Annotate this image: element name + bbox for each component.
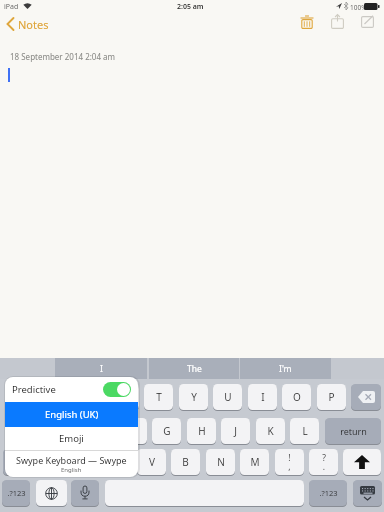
button[interactable]: A xyxy=(14,418,43,444)
button[interactable]: O xyxy=(282,384,311,410)
staticText: M xyxy=(250,455,260,469)
button[interactable]: English (UK) xyxy=(5,402,138,427)
button[interactable]: S xyxy=(49,418,78,444)
staticText: T xyxy=(156,390,162,404)
staticText: Q xyxy=(17,390,25,404)
staticText: English (UK) xyxy=(45,408,99,421)
staticText: The xyxy=(187,363,202,375)
button[interactable] xyxy=(300,15,314,29)
button[interactable] xyxy=(353,480,382,506)
staticText: S xyxy=(61,424,67,438)
button[interactable]: I xyxy=(55,358,147,379)
staticText: R xyxy=(121,390,128,404)
staticText: V xyxy=(149,455,155,469)
staticText: G xyxy=(163,424,171,438)
button[interactable] xyxy=(351,384,381,410)
button[interactable]: T xyxy=(144,384,173,410)
staticText: 18 September 2014 2:04 am xyxy=(10,51,116,62)
staticText: W xyxy=(51,390,61,404)
button[interactable]: B xyxy=(171,449,200,475)
staticText: ! , xyxy=(288,452,291,473)
button[interactable]: ? . xyxy=(309,449,338,475)
button[interactable] xyxy=(331,14,344,29)
button[interactable]: K xyxy=(256,418,285,444)
button[interactable]: return xyxy=(325,418,381,444)
button[interactable] xyxy=(3,449,28,475)
staticText: H xyxy=(198,424,206,438)
staticText: U xyxy=(224,390,232,404)
staticText: iPad xyxy=(4,2,19,12)
staticText: A xyxy=(25,424,32,438)
staticText: I xyxy=(100,363,103,375)
button[interactable]: L xyxy=(290,418,319,444)
staticText: X xyxy=(80,455,86,469)
button[interactable]: V xyxy=(137,449,166,475)
button[interactable] xyxy=(36,480,67,506)
staticText: O xyxy=(293,390,301,404)
staticText: 2:05 am xyxy=(177,2,204,12)
button[interactable]: P xyxy=(317,384,346,410)
staticText: Y xyxy=(191,390,197,404)
button[interactable]: Z xyxy=(33,449,62,475)
button[interactable]: ! , xyxy=(275,449,304,475)
staticText: F xyxy=(130,424,136,438)
button[interactable]: Emoji xyxy=(5,427,138,450)
staticText: ? . xyxy=(322,452,326,473)
button[interactable]: G xyxy=(152,418,181,444)
button[interactable]: The xyxy=(149,358,239,379)
button[interactable]: X xyxy=(68,449,97,475)
button[interactable]: Notes xyxy=(6,15,49,33)
button[interactable]: .?123 xyxy=(2,480,30,506)
staticText: English xyxy=(61,466,82,474)
button[interactable]: R xyxy=(110,384,139,410)
button[interactable]: H xyxy=(187,418,216,444)
button[interactable]: C xyxy=(102,449,131,475)
staticText: .?123 xyxy=(7,488,26,498)
staticText: Swype Keyboard — Swype xyxy=(16,454,127,466)
staticText: E xyxy=(87,390,93,404)
button[interactable]: E xyxy=(75,384,104,410)
button[interactable]: W xyxy=(41,384,70,410)
button[interactable] xyxy=(105,480,304,506)
staticText: J xyxy=(234,424,237,438)
button[interactable]: D xyxy=(83,418,112,444)
staticText: Emoji xyxy=(59,432,84,445)
staticText: P xyxy=(328,390,335,404)
staticText: return xyxy=(340,425,367,437)
button[interactable]: I xyxy=(248,384,277,410)
button[interactable]: Q xyxy=(6,384,35,410)
staticText: L xyxy=(302,424,308,438)
button[interactable] xyxy=(343,449,381,475)
button[interactable] xyxy=(361,15,374,28)
button[interactable]: M xyxy=(240,449,269,475)
staticText: 100% xyxy=(350,3,367,12)
button[interactable]: .?123 xyxy=(309,480,347,506)
button[interactable]: I'm xyxy=(240,358,331,379)
button[interactable]: Swype Keyboard — Swype xyxy=(5,451,138,477)
staticText: K xyxy=(267,424,274,438)
button[interactable]: Predictive xyxy=(5,377,138,402)
staticText: Predictive xyxy=(12,383,56,396)
staticText: Z xyxy=(45,455,51,469)
button[interactable]: F xyxy=(118,418,147,444)
button[interactable]: N xyxy=(206,449,235,475)
button[interactable] xyxy=(71,480,99,506)
button[interactable]: J xyxy=(221,418,250,444)
button[interactable]: Y xyxy=(179,384,208,410)
staticText: I'm xyxy=(279,363,292,375)
staticText: N xyxy=(217,455,225,469)
staticText: Notes xyxy=(18,17,49,32)
button[interactable]: U xyxy=(213,384,242,410)
staticText: D xyxy=(94,424,102,438)
staticText: I xyxy=(261,390,265,404)
staticText: B xyxy=(182,455,189,469)
staticText: .?123 xyxy=(319,488,338,498)
staticText: C xyxy=(113,455,120,469)
